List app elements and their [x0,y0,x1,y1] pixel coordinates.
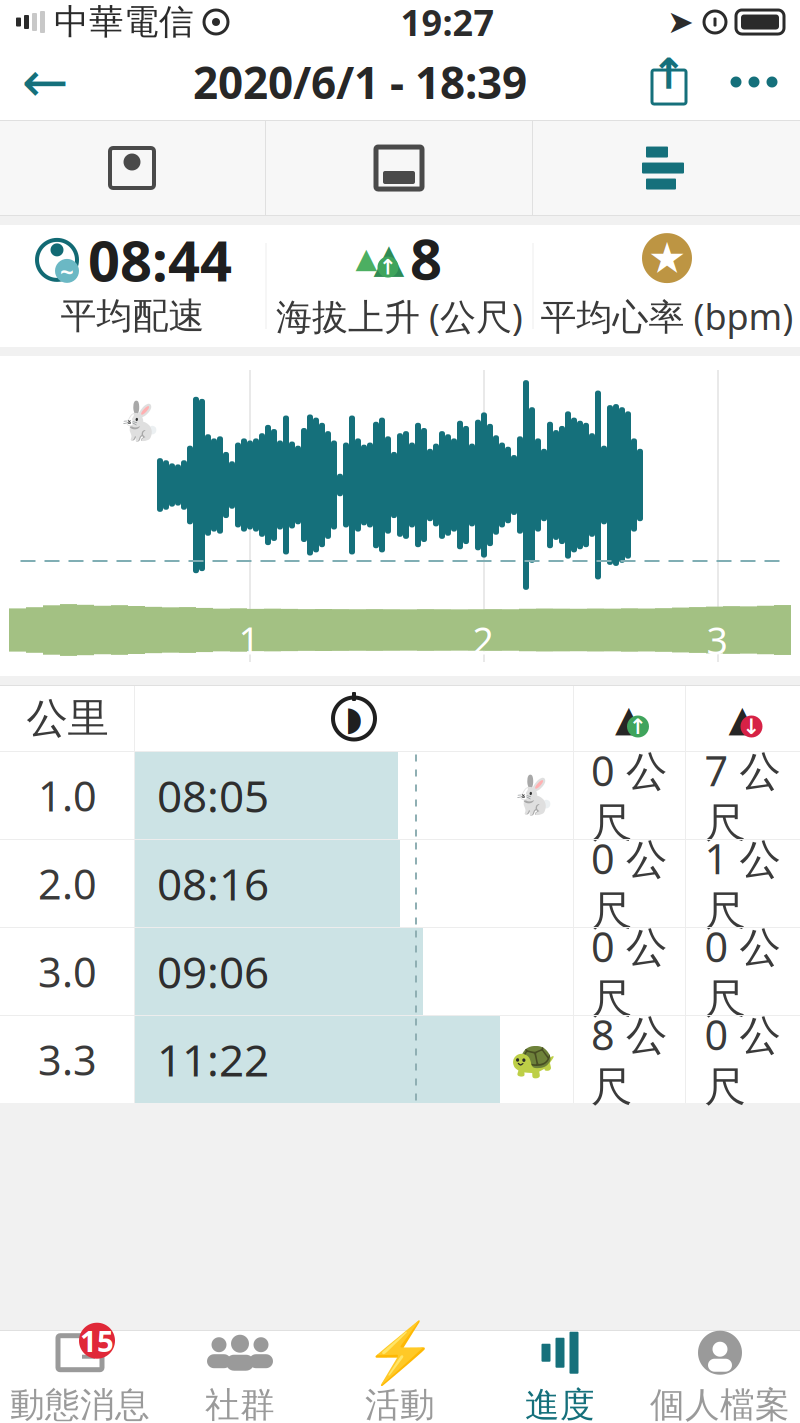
staticText: ↑ [651,50,687,98]
staticText: ▲ [373,235,404,281]
button[interactable]: Charts [533,121,800,215]
staticText: 3.3 [38,1032,97,1087]
staticText: 活動 [365,1384,435,1423]
staticText: 個人檔案 [650,1384,790,1423]
staticText: ▲ [355,242,377,274]
staticText: 8 公尺 [591,1007,667,1112]
button[interactable]: ⚡ [320,1331,480,1423]
staticText: 15 [80,1321,114,1360]
staticText: 08:44 [88,223,232,297]
staticText: 社群 [205,1384,275,1423]
staticText: 09:06 [157,942,269,1001]
staticText: 1.0 [38,768,97,823]
staticText: 7 公尺 [704,743,780,848]
button[interactable]: Back [0,44,90,120]
button[interactable]: Map [0,121,265,215]
staticText: 1 公尺 [704,831,780,936]
button[interactable]: 個人檔案 [640,1331,800,1423]
button[interactable]: Photos [266,121,532,215]
staticText: 11:22 [157,1030,269,1089]
button[interactable]: 進度 [480,1331,640,1423]
staticText: ~ [60,255,74,287]
staticText: 0 公尺 [704,919,780,1024]
staticText: ⚡ [363,1319,436,1386]
staticText: 8 [410,221,442,295]
staticText: ➤ [667,4,694,40]
staticText: 3 [706,615,727,665]
staticText: 0 公尺 [591,919,667,1024]
staticText: ▲ [728,698,756,739]
staticText: 3.0 [38,944,97,999]
button[interactable]: 2.0 [0,840,800,927]
button[interactable]: Share [630,44,708,120]
staticText: 0 公尺 [591,743,667,848]
staticText: 08:05 [157,766,269,825]
button[interactable]: 15 [0,1331,160,1423]
staticText: 中華電信 [54,1,194,43]
staticText: 動態消息 [10,1384,150,1423]
staticText: 🐇 [116,400,162,443]
staticText: 2 [472,615,493,665]
staticText: ↑ [379,255,397,279]
staticText: 08:16 [157,854,269,913]
button[interactable]: 3.0 [0,928,800,1015]
button[interactable]: 社群 [160,1331,320,1423]
staticText: 公里 [26,693,108,744]
staticText: 進度 [525,1384,595,1423]
staticText: ← [21,50,68,114]
staticText: ↑ [629,714,647,739]
staticText: 19:27 [400,0,494,46]
staticText: 1 [238,615,259,665]
staticText: 平均配速 [60,294,204,338]
staticText: 2020/6/1 - 18:39 [193,53,527,111]
staticText: 2.0 [38,856,97,911]
staticText: ▲ [615,698,643,739]
staticText: ↓ [742,714,760,739]
button[interactable]: 1.0 [0,752,800,839]
button[interactable]: 3.3 [0,1016,800,1103]
button[interactable]: More options [708,44,800,120]
staticText: ◗ [345,700,363,737]
staticText: 平均心率 (bpm) [540,292,793,340]
staticText: 0 公尺 [591,831,667,936]
staticText: 🐢 [510,1038,556,1081]
staticText: 🐇 [510,774,556,817]
staticText: 0 公尺 [704,1007,780,1112]
staticText: ★ [648,234,686,282]
staticText: 海拔上升 (公尺) [276,292,523,340]
